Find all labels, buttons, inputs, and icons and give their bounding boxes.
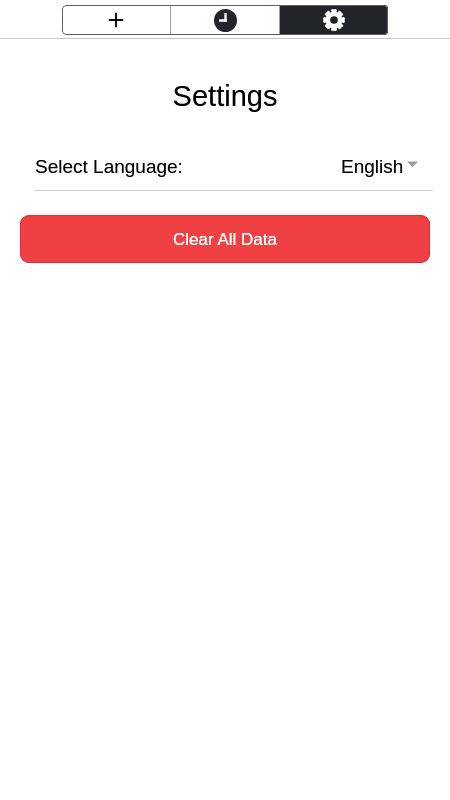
staticText: Select Language: <box>35 156 183 177</box>
button[interactable]: Clear All Data <box>20 215 430 263</box>
button[interactable]: Select Language: <box>35 156 418 177</box>
button[interactable]: Settings <box>280 5 388 35</box>
staticText: Settings <box>0 80 450 112</box>
staticText: English <box>341 156 404 177</box>
staticText: English <box>341 156 404 177</box>
staticText: Clear All Data <box>173 230 277 249</box>
button[interactable]: Add entry <box>62 5 170 35</box>
button[interactable]: History <box>171 5 279 35</box>
staticText: Settings <box>0 80 450 112</box>
staticText: Select Language: <box>35 156 183 177</box>
